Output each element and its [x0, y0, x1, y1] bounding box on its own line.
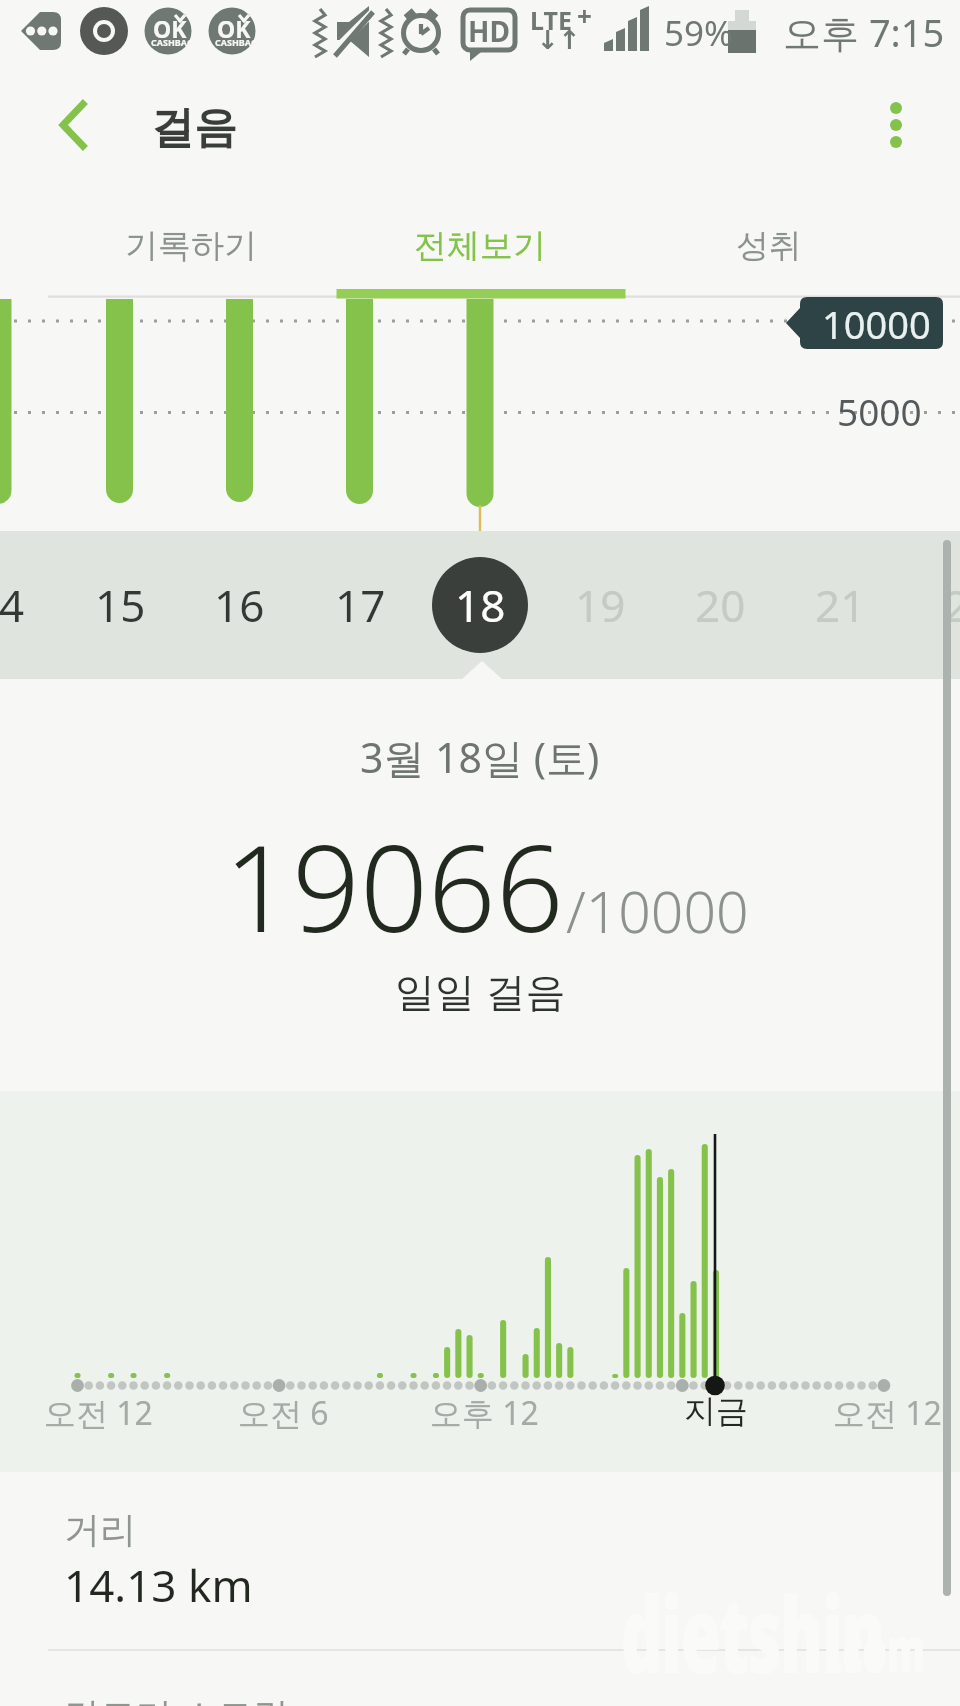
staticText: 19 [575, 575, 626, 635]
staticText: 21 [815, 575, 866, 635]
button[interactable]: 15 [70, 555, 170, 655]
button[interactable]: 17 [310, 555, 410, 655]
button[interactable]: 19 [550, 555, 650, 655]
staticText: 지금 [684, 1391, 748, 1431]
button[interactable]: Back [0, 70, 130, 180]
staticText: 오후 12 [430, 1391, 539, 1435]
button[interactable]: 4 [0, 555, 62, 655]
staticText: 칼로리 소모량 [64, 1690, 290, 1706]
button[interactable]: 21 [790, 555, 890, 655]
staticText: 14.13 km [64, 1555, 253, 1615]
staticText: 오전 12 [44, 1391, 153, 1435]
button[interactable]: 20 [670, 555, 770, 655]
staticText: 오후 7:15 [783, 6, 945, 58]
staticText: 3월 18일 (토) [360, 729, 600, 785]
staticText: CASHBAG [151, 36, 194, 48]
staticText: /10000 [566, 872, 749, 950]
staticText: 걸음 [151, 101, 237, 155]
staticText: 오전 6 [238, 1391, 329, 1435]
staticText: 오전 12 [833, 1391, 942, 1435]
staticText: 17 [335, 575, 386, 635]
staticText: 10000 [822, 298, 931, 350]
staticText: 20 [695, 575, 746, 635]
staticText: 전체보기 [414, 225, 546, 267]
staticText: 19066 [224, 805, 564, 967]
staticText: ↓↑ [537, 25, 581, 55]
staticText: OK [153, 13, 187, 44]
staticText: LTE [530, 3, 572, 37]
staticText: + [577, 0, 592, 33]
staticText: OK [217, 13, 251, 44]
staticText: CASHBAG [215, 36, 258, 48]
staticText: 5000 [837, 386, 922, 436]
button[interactable]: 기록하기 [47, 180, 335, 291]
staticText: HD [468, 12, 510, 50]
button[interactable]: 18 [430, 555, 530, 655]
button[interactable]: 전체보기 [335, 180, 624, 291]
staticText: 15 [95, 575, 146, 635]
button[interactable]: More options [850, 70, 960, 180]
button[interactable]: 성취 [624, 180, 913, 291]
staticText: 16 [214, 575, 265, 635]
button[interactable]: 2 [907, 555, 960, 655]
staticText: 일일 걸음 [395, 963, 566, 1018]
staticText: 18 [455, 575, 506, 635]
staticText: 성취 [736, 225, 802, 267]
staticText: 기록하기 [125, 225, 257, 267]
button[interactable]: 16 [189, 555, 289, 655]
staticText: 59% [664, 9, 734, 57]
staticText: 2 [944, 575, 960, 635]
staticText: 4 [0, 575, 25, 635]
staticText: 거리 [64, 1507, 136, 1552]
